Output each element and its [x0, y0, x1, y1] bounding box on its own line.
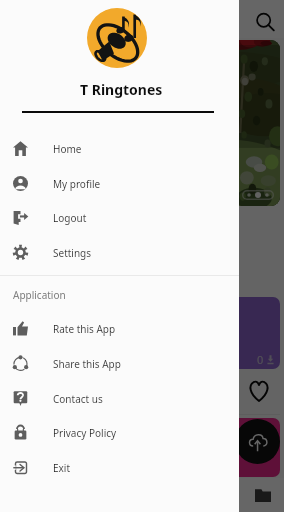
button[interactable]: Upload [235, 419, 280, 464]
button[interactable]: My profile [0, 166, 239, 201]
staticText: Home [53, 142, 82, 156]
staticText: Contact us [53, 392, 103, 406]
staticText: Logout [53, 211, 87, 225]
button[interactable]: Contact us [0, 381, 239, 416]
staticText: Privacy Policy [53, 426, 117, 440]
button[interactable]: Logout [0, 200, 239, 235]
staticText: T Ringtones [46, 10, 126, 29]
button[interactable]: Share this App [0, 346, 239, 381]
button[interactable]: Folders [255, 480, 271, 510]
staticText: Settings [53, 246, 92, 260]
button[interactable]: Home [0, 131, 239, 166]
button[interactable]: Search [254, 11, 276, 33]
button[interactable]: Exit [0, 450, 239, 485]
button[interactable]: Favourite [248, 380, 270, 402]
staticText: T Ringtones [80, 80, 163, 99]
button[interactable]: Privacy Policy [0, 415, 239, 450]
staticText: 0 [257, 352, 264, 367]
staticText: My profile [53, 177, 101, 191]
staticText: Application [13, 288, 66, 302]
staticText: Share this App [53, 357, 121, 371]
button[interactable]: Settings [0, 235, 239, 270]
staticText: Exit [53, 461, 71, 475]
staticText: Rate this App [53, 322, 116, 336]
button[interactable]: Rate this App [0, 311, 239, 346]
